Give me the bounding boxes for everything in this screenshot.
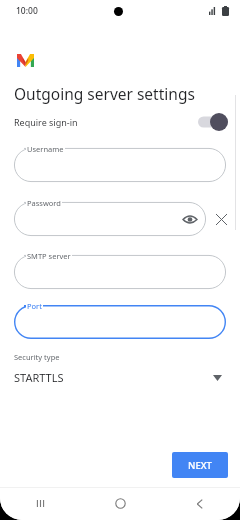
button[interactable]: Password xyxy=(14,202,206,236)
staticText: Port xyxy=(27,301,42,311)
button[interactable]: Require sign-in toggle, on xyxy=(198,113,228,131)
button[interactable]: Security type xyxy=(0,352,240,385)
staticText: Outgoing server settings xyxy=(14,83,195,104)
staticText: Username xyxy=(27,144,64,154)
button[interactable]: NEXT xyxy=(172,452,228,478)
button[interactable]: Require sign-in xyxy=(0,111,240,133)
staticText: Password xyxy=(27,198,61,208)
button[interactable]: Back xyxy=(160,487,240,520)
button[interactable]: Show password xyxy=(182,211,198,227)
button[interactable]: Clear password xyxy=(210,208,232,230)
button[interactable]: Home xyxy=(80,487,160,520)
button[interactable]: Port xyxy=(14,305,226,339)
staticText: NEXT xyxy=(188,459,212,472)
button[interactable]: Username xyxy=(14,148,226,182)
staticText: Require sign-in xyxy=(14,116,78,128)
staticText: STARTTLS xyxy=(14,370,64,385)
staticText: 10:00 xyxy=(16,5,38,17)
staticText: Security type xyxy=(14,352,60,362)
button[interactable]: SMTP server xyxy=(14,255,226,289)
staticText: SMTP server xyxy=(27,251,71,261)
button[interactable]: Recent apps xyxy=(0,487,80,520)
